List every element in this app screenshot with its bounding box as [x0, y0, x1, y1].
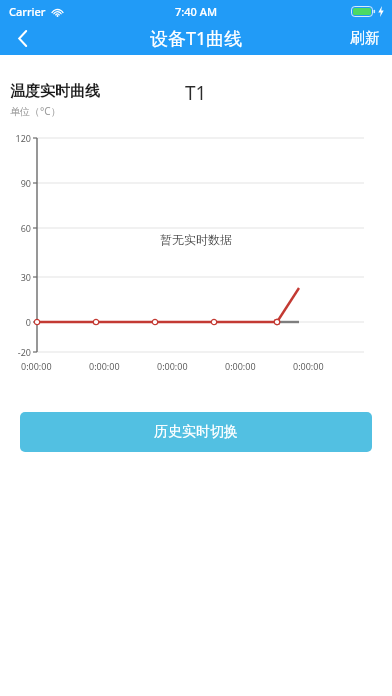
staticText: -20 [1, 346, 31, 358]
staticText: 单位（°C） [10, 104, 61, 118]
staticText: 0:00:00 [157, 360, 188, 372]
button[interactable]: 历史实时切换 [20, 412, 372, 452]
button[interactable]: Back [0, 22, 46, 55]
button[interactable]: 刷新 [338, 22, 392, 55]
staticText: 0:00:00 [293, 360, 324, 372]
staticText: 0:00:00 [225, 360, 256, 372]
staticText: 60 [1, 222, 31, 234]
staticText: 0 [1, 316, 31, 328]
staticText: T1 [185, 80, 207, 106]
staticText: 暂无实时数据 [160, 232, 232, 247]
staticText: Carrier [9, 4, 46, 19]
staticText: 90 [1, 177, 31, 189]
staticText: 30 [1, 271, 31, 283]
staticText: 0:00:00 [21, 360, 52, 372]
staticText: 温度实时曲线 [10, 82, 100, 101]
staticText: 120 [1, 132, 31, 144]
staticText: 7:40 AM [175, 4, 218, 19]
staticText: 刷新 [350, 29, 380, 48]
staticText: 0:00:00 [89, 360, 120, 372]
staticText: 设备T1曲线 [150, 26, 243, 51]
staticText: 历史实时切换 [154, 423, 238, 441]
